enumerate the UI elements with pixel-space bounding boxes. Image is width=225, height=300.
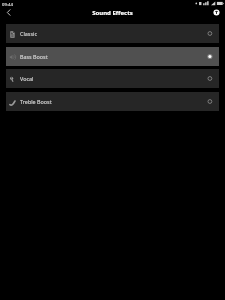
staticText: Vocal (20, 75, 34, 82)
button[interactable]: Bass Boost (6, 47, 219, 66)
staticText: Sound Effects (92, 9, 133, 17)
staticText: Classic (20, 30, 37, 37)
staticText: Bass Boost (20, 53, 48, 60)
button[interactable]: Classic (6, 24, 219, 43)
staticText: 09:44 (2, 1, 13, 7)
staticText: Treble Boost (20, 98, 52, 105)
button[interactable]: Back (1, 5, 16, 20)
button[interactable]: Help (211, 7, 222, 18)
button[interactable]: Treble Boost (6, 92, 219, 111)
button[interactable]: Vocal (6, 69, 219, 88)
